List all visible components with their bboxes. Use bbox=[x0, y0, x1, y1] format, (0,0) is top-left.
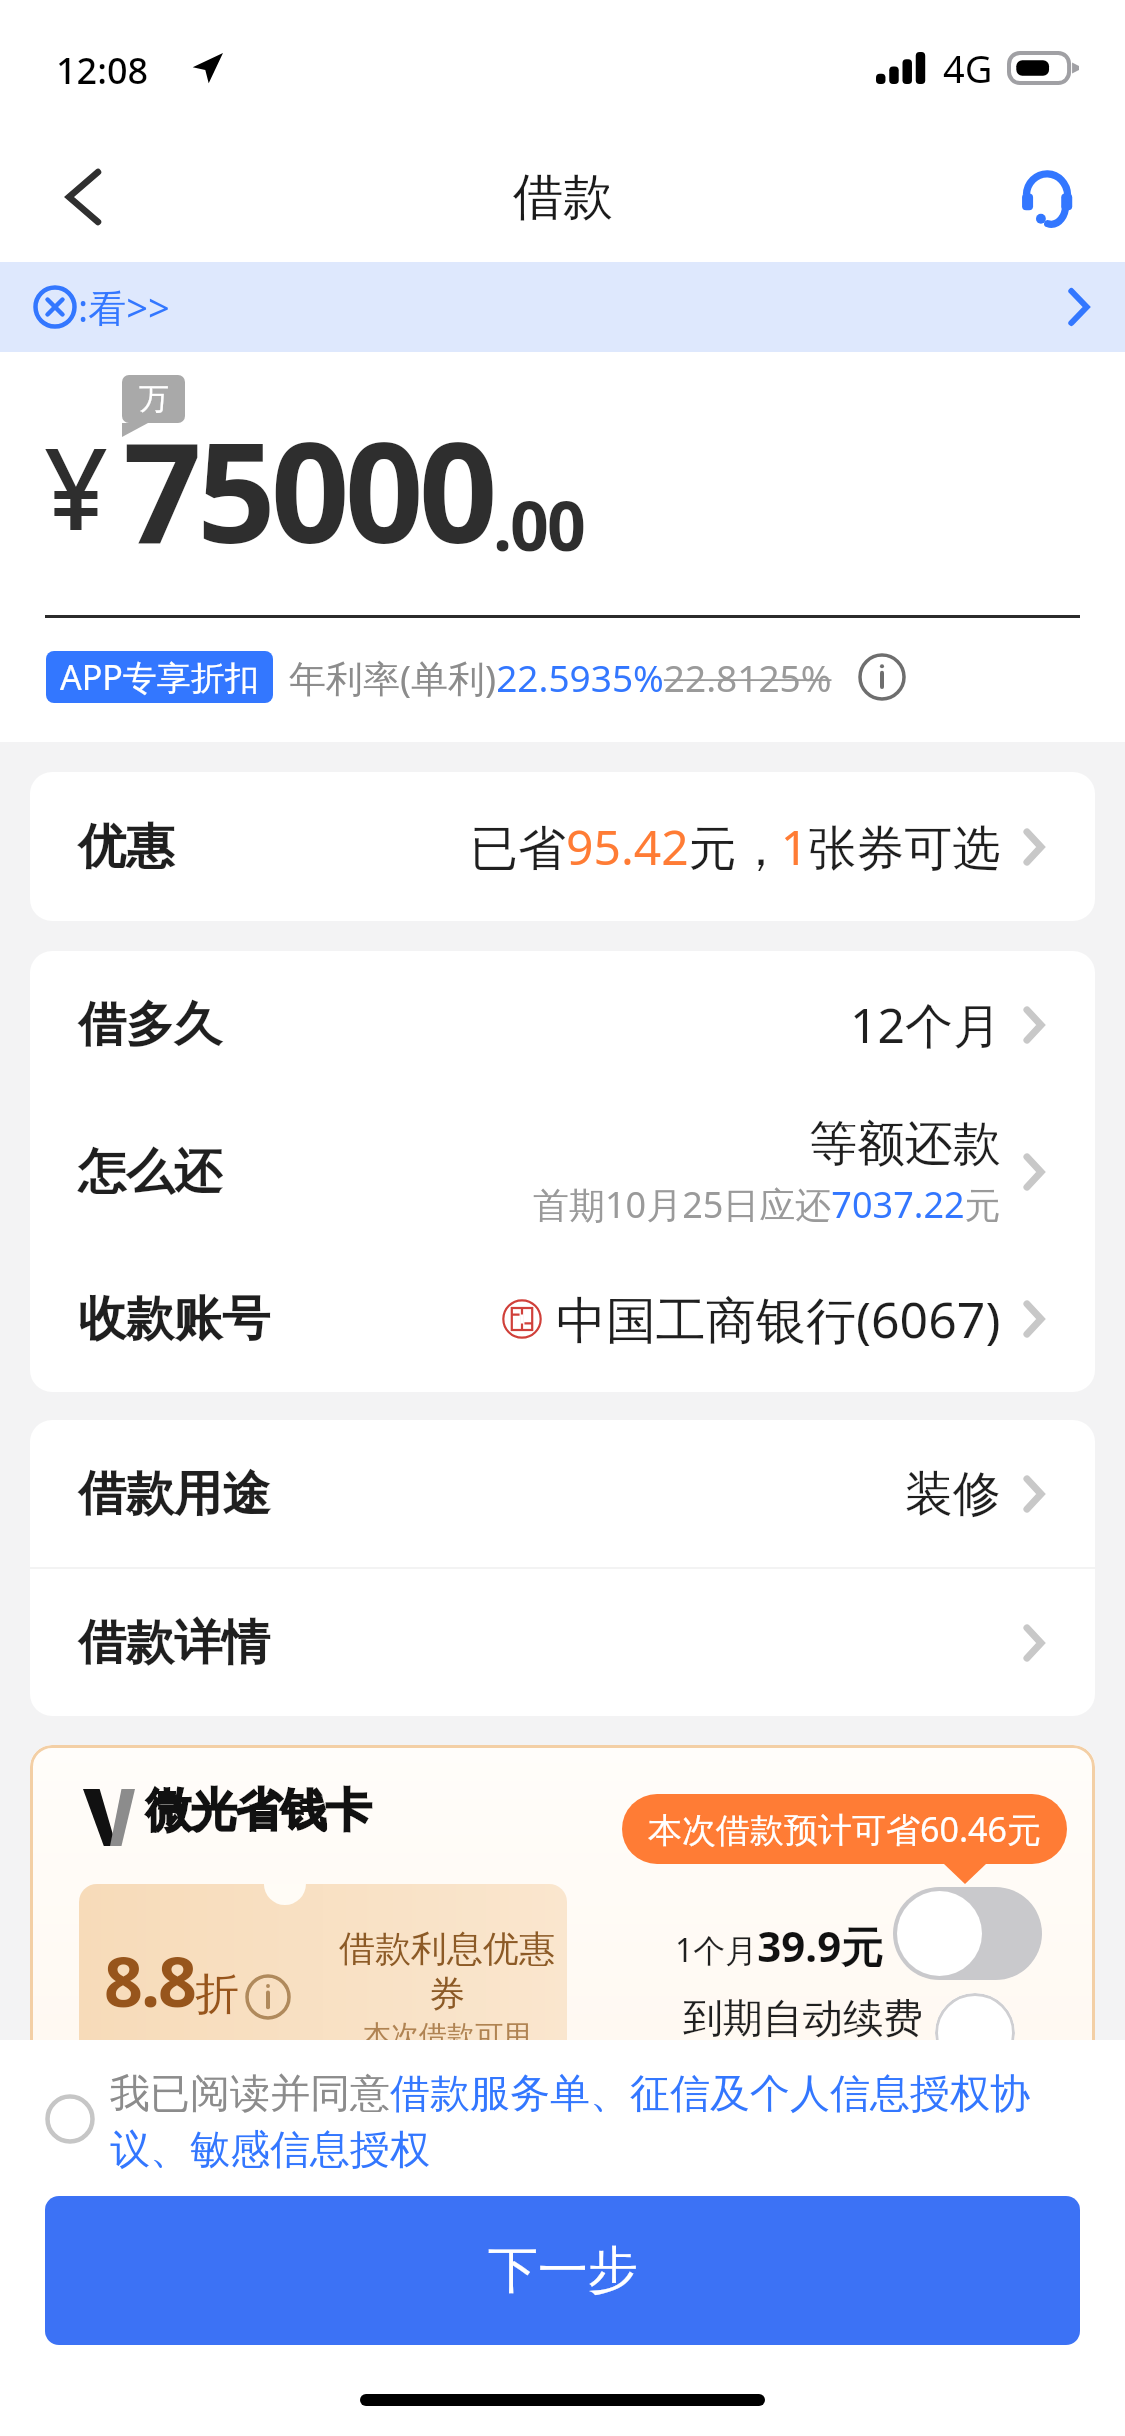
staticText: 券 bbox=[429, 1971, 465, 2016]
staticText: 微光省钱卡 bbox=[146, 1782, 371, 1840]
staticText: 万 bbox=[139, 380, 169, 418]
staticText: 本次借款可用 bbox=[363, 2018, 531, 2053]
button[interactable]: Toggle auto renew bbox=[893, 1887, 1042, 1980]
staticText: 我已阅读并同意借款服务单、征信及个人信息授权协议、敏感信息授权 bbox=[110, 2068, 1035, 2175]
button[interactable]: Agree checkbox bbox=[33, 2082, 106, 2155]
staticText: 借款用途 bbox=[78, 1464, 270, 1524]
staticText: :看>> bbox=[78, 281, 170, 333]
button[interactable]: Customer service bbox=[1005, 132, 1125, 262]
staticText: 中国工商银行(6067) bbox=[556, 1285, 1001, 1353]
staticText: 4G bbox=[943, 42, 993, 94]
staticText: 借款详情 bbox=[78, 1613, 270, 1673]
button[interactable]: 收款账号 bbox=[30, 1245, 1095, 1392]
staticText: 下一步 bbox=[488, 2239, 638, 2302]
staticText: APP专享折扣 bbox=[60, 654, 259, 700]
staticText: 到期自动续费 bbox=[683, 1993, 923, 2043]
staticText: ¥ bbox=[44, 410, 109, 563]
staticText: 借款 bbox=[513, 166, 613, 229]
button[interactable]: 借款详情 bbox=[30, 1569, 1095, 1716]
staticText: 1个月39.9元 bbox=[675, 1917, 884, 1974]
staticText: 借多久 bbox=[78, 995, 222, 1055]
button[interactable]: 优惠 bbox=[30, 772, 1095, 921]
staticText: 收款账号 bbox=[78, 1289, 270, 1349]
staticText: 等额还款 bbox=[809, 1114, 1001, 1174]
staticText: 12:08 bbox=[56, 46, 149, 95]
button[interactable]: 借款用途 bbox=[30, 1420, 1095, 1567]
staticText: 怎么还 bbox=[78, 1142, 222, 1202]
button[interactable]: Back bbox=[0, 132, 164, 262]
button[interactable]: 下一步 bbox=[45, 2196, 1080, 2345]
staticText: .00 bbox=[493, 478, 584, 571]
staticText: 装修 bbox=[905, 1464, 1001, 1524]
button[interactable]: 借多久 bbox=[30, 951, 1095, 1098]
staticText: 75000 bbox=[123, 395, 493, 583]
staticText: 优惠 bbox=[78, 817, 174, 877]
staticText: 年利率(单利)22.5935%22.8125% bbox=[289, 652, 832, 703]
staticText: 借款利息优惠 bbox=[339, 1926, 555, 1971]
staticText: 12个月 bbox=[850, 992, 1001, 1058]
button[interactable]: 微光省钱卡 bbox=[30, 1745, 1095, 2175]
staticText: 本次借款预计可省60.46元 bbox=[648, 1806, 1041, 1852]
button[interactable]: :看>> bbox=[0, 262, 1125, 352]
staticText: 已省95.42元，1张券可选 bbox=[470, 814, 1001, 880]
staticText: 首期10月25日应还7037.22元 bbox=[533, 1180, 1001, 1229]
staticText: 8.8 bbox=[104, 1934, 195, 2027]
button[interactable]: 怎么还 bbox=[30, 1098, 1095, 1245]
staticText: 折 bbox=[195, 1967, 239, 2022]
